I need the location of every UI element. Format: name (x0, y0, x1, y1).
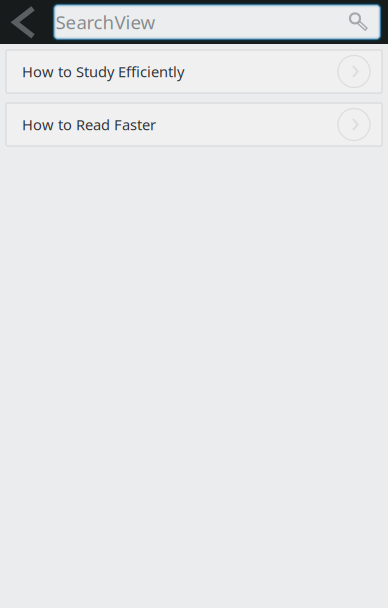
button[interactable]: Search (52, 3, 382, 41)
button[interactable]: Back (0, 0, 52, 44)
button[interactable]: How to Read Faster (6, 103, 382, 146)
staticText: How to Read Faster (22, 115, 156, 134)
staticText: SearchView (56, 10, 156, 34)
staticText: How to Study Efficiently (22, 62, 184, 81)
button[interactable]: How to Study Efficiently (6, 50, 382, 93)
